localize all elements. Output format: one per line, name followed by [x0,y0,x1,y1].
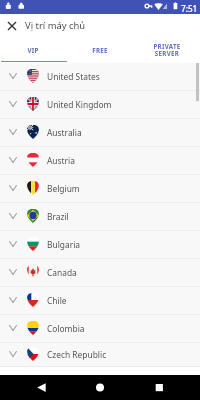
button[interactable]: Colombia [0,315,200,343]
button[interactable]: Bulgaria [0,231,200,259]
staticText: PRIVATE SERVER [153,42,181,58]
button[interactable]: Czech Republic [0,343,200,367]
button[interactable]: Belgium [0,175,200,203]
button[interactable]: Austria [0,147,200,175]
button[interactable]: FREE [66,38,133,63]
button[interactable]: PRIVATE SERVER [133,38,200,63]
button[interactable]: Chile [0,287,200,315]
staticText: Bulgaria [47,239,81,250]
button[interactable]: Canada [0,259,200,287]
button[interactable]: Australia [0,119,200,147]
staticText: Vị trí máy chủ [25,19,86,32]
staticText: United States [47,71,100,82]
staticText: Czech Republic [47,349,107,360]
staticText: VIP [27,46,39,54]
staticText: United Kingdom [47,99,112,110]
staticText: Austria [47,155,75,166]
staticText: Brazil [47,211,69,222]
staticText: 7:51 [181,3,198,14]
staticText: Canada [47,267,77,278]
button[interactable]: United Kingdom [0,91,200,119]
button[interactable]: Brazil [0,203,200,231]
staticText: FREE [92,46,108,54]
staticText: Chile [47,295,67,306]
button[interactable]: United States [0,63,200,91]
staticText: Australia [47,127,82,138]
staticText: Belgium [47,183,80,194]
button[interactable]: VIP [0,38,66,63]
button[interactable]: Close [0,14,24,38]
staticText: Colombia [47,323,85,334]
